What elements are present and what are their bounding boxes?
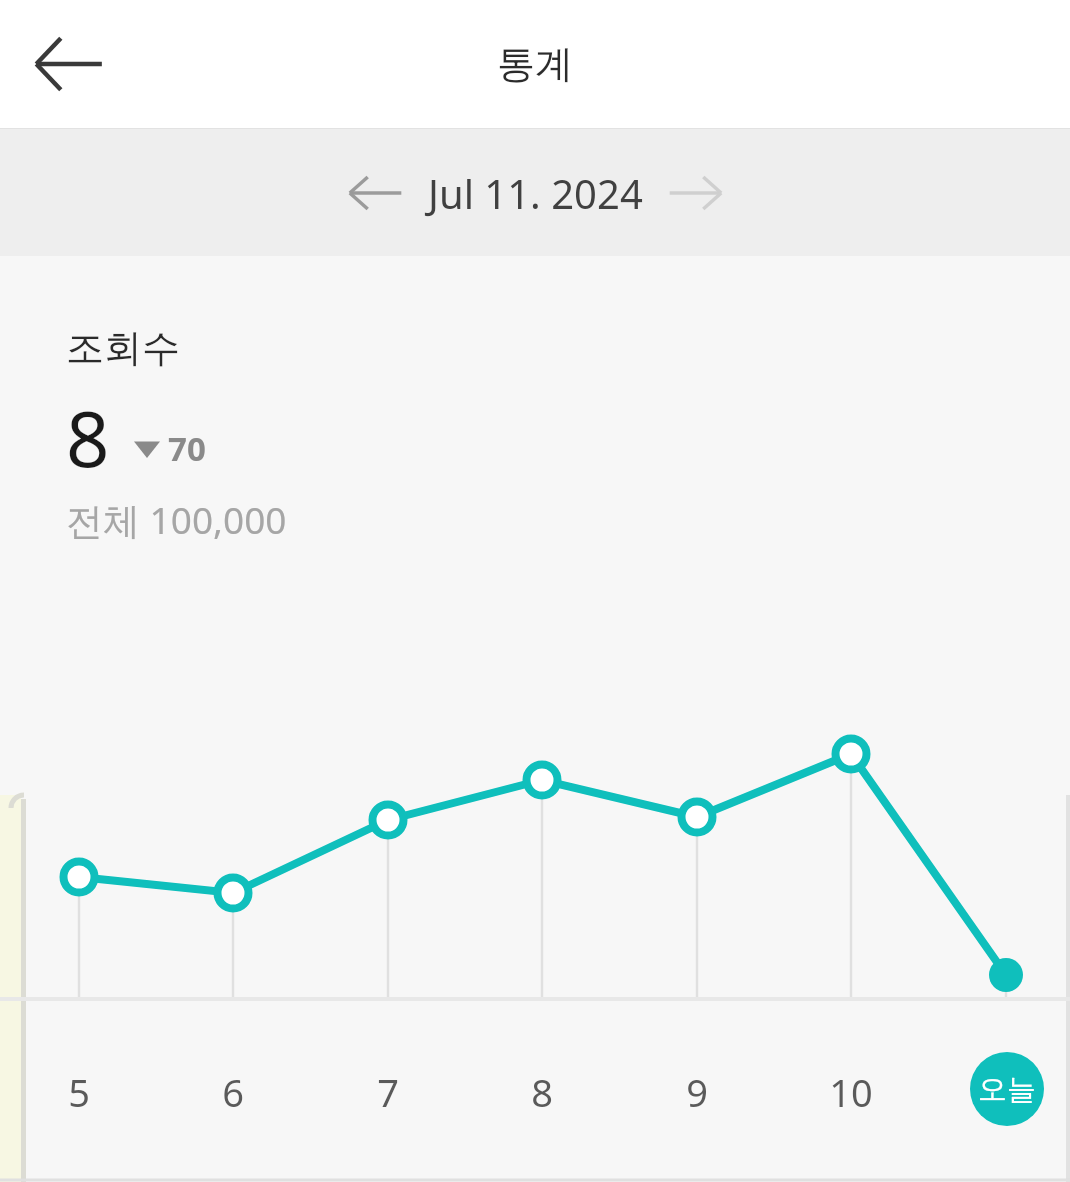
button[interactable]: Next day bbox=[657, 154, 735, 232]
staticText: 조회수 bbox=[66, 324, 180, 372]
staticText: Jul 11. 2024 bbox=[428, 166, 643, 220]
staticText: 6 bbox=[222, 1066, 244, 1118]
button[interactable]: Back bbox=[20, 16, 116, 112]
staticText: 9 bbox=[686, 1066, 708, 1118]
staticText: 오늘 bbox=[978, 1071, 1036, 1108]
staticText: 7 bbox=[377, 1066, 399, 1118]
staticText: 전체 100,000 bbox=[66, 494, 287, 545]
staticText: 70 bbox=[168, 426, 206, 471]
staticText: 8 bbox=[531, 1066, 553, 1118]
staticText: 5 bbox=[68, 1066, 90, 1118]
staticText: 통계 bbox=[497, 40, 573, 88]
button[interactable]: 오늘 bbox=[970, 1052, 1044, 1126]
staticText: 8 bbox=[66, 386, 110, 490]
button[interactable]: Previous day bbox=[336, 154, 414, 232]
staticText: 10 bbox=[829, 1066, 873, 1118]
